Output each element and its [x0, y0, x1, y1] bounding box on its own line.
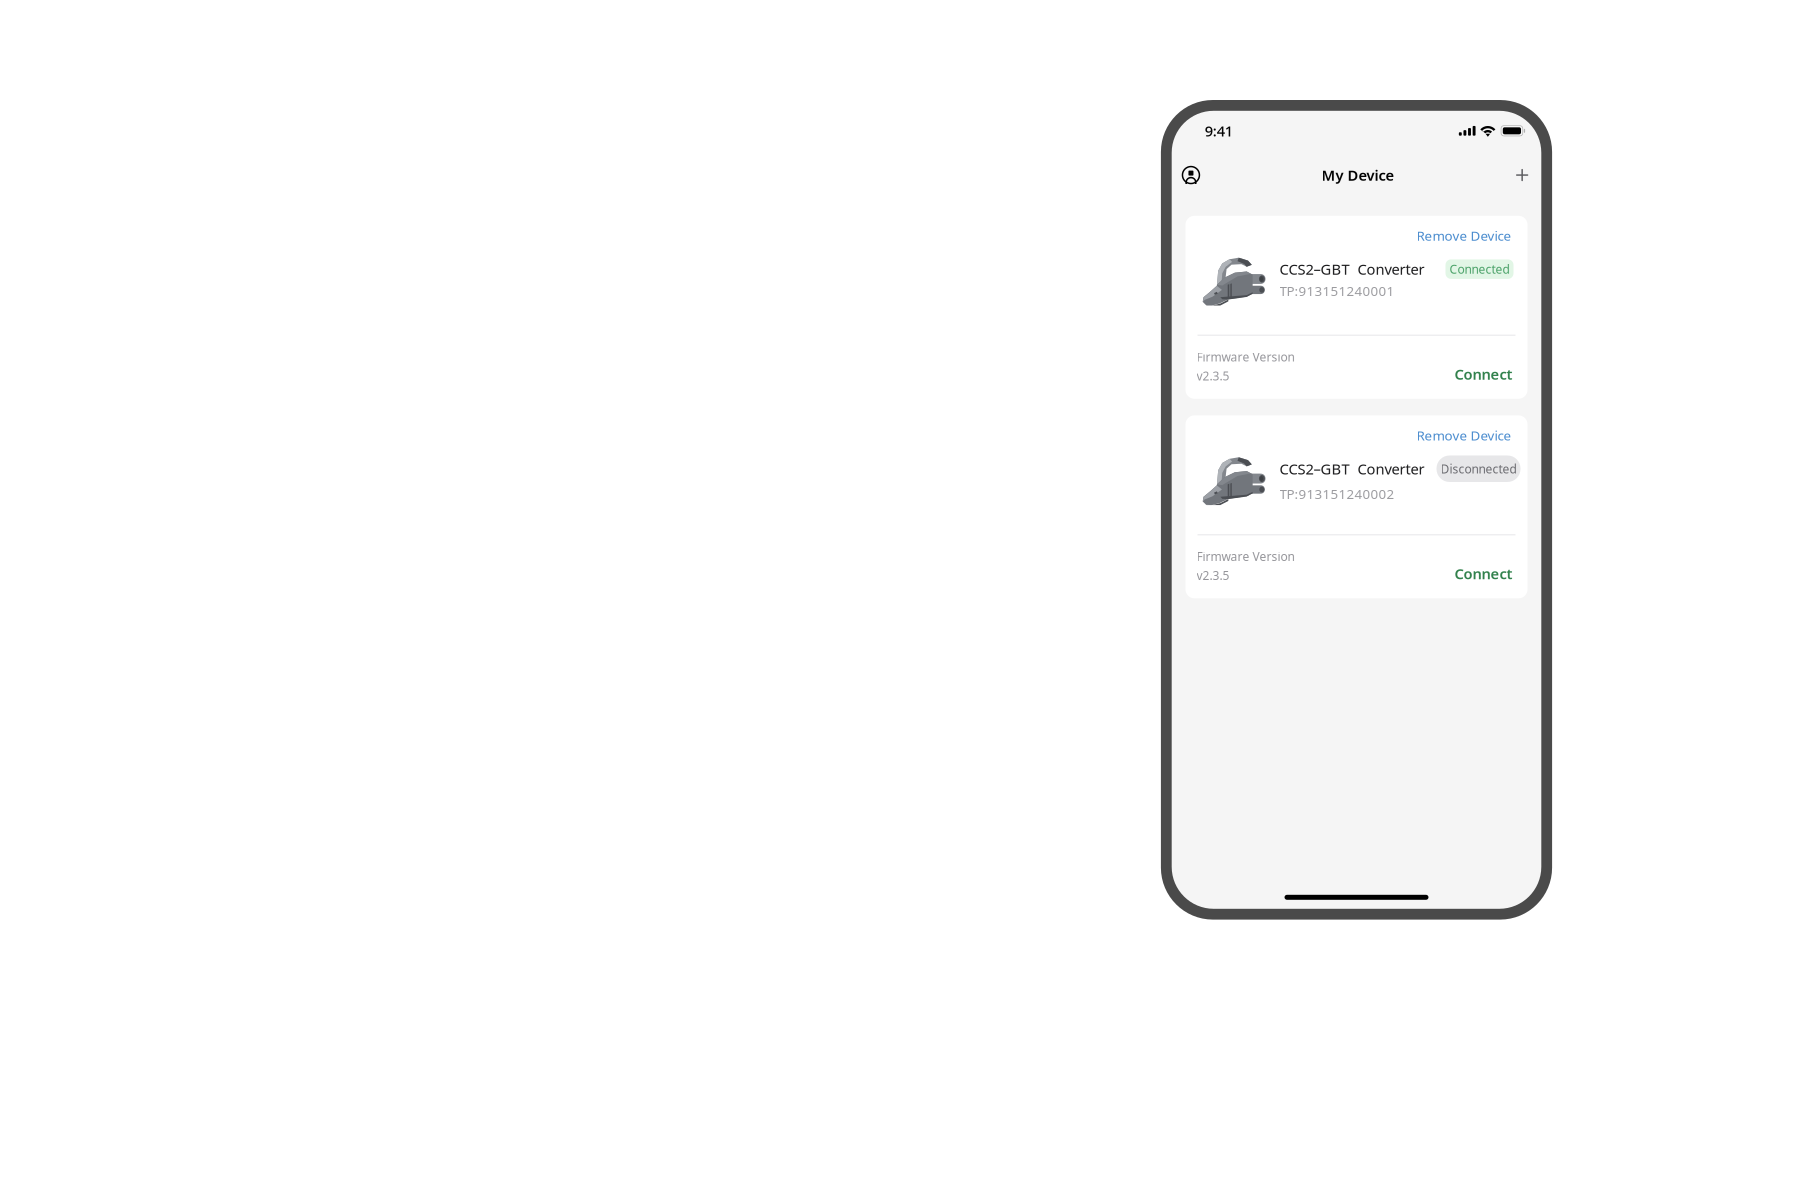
staticText: TP:913151240001 [1279, 282, 1394, 300]
button[interactable]: Remove Device [1414, 423, 1513, 447]
staticText: My Device [1322, 165, 1395, 185]
button[interactable]: Connect [1452, 564, 1514, 583]
staticText: v2.3.5 [1196, 368, 1229, 384]
staticText: TP:913151240002 [1279, 485, 1394, 503]
staticText: Firmware Version [1196, 349, 1294, 365]
staticText: 9:41 [1205, 121, 1233, 141]
staticText: Connect [1454, 564, 1512, 583]
staticText: v2.3.5 [1196, 567, 1229, 583]
staticText: CCS2–GBT Converter [1279, 459, 1424, 478]
staticText: Firmware Version [1196, 548, 1294, 564]
button[interactable]: Account [1175, 159, 1207, 191]
staticText: CCS2–GBT Converter [1279, 259, 1424, 279]
button[interactable]: Connect [1452, 364, 1514, 384]
staticText: Connect [1454, 364, 1512, 384]
button[interactable]: Add Device [1509, 162, 1535, 188]
button[interactable]: Remove Device [1414, 224, 1513, 247]
staticText: Connected [1449, 261, 1509, 277]
staticText: Remove Device [1416, 426, 1511, 444]
staticText: Disconnected [1440, 461, 1516, 477]
staticText: Remove Device [1416, 227, 1511, 244]
